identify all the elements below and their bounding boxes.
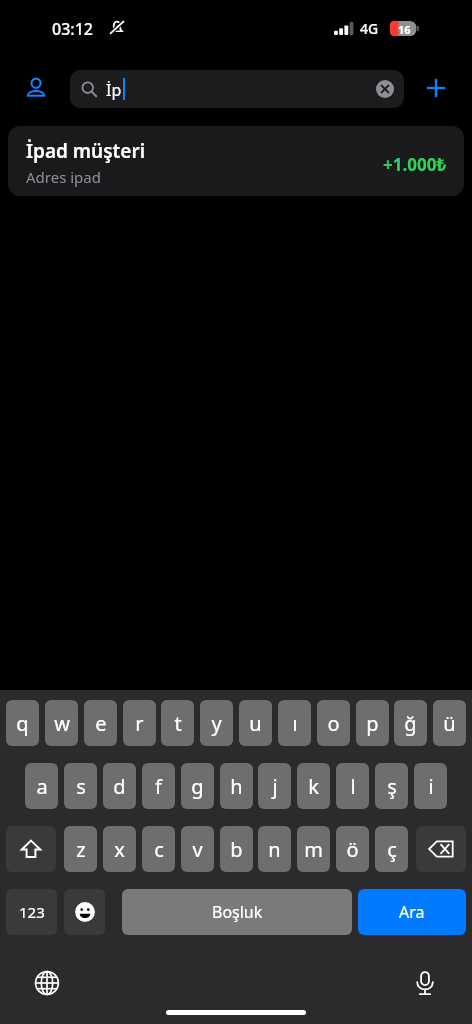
staticText: ö	[346, 836, 359, 863]
button[interactable]: d	[103, 763, 136, 809]
staticText: m	[304, 836, 323, 863]
staticText: d	[113, 773, 126, 800]
staticText: 16	[398, 22, 411, 37]
button[interactable]: s	[64, 763, 97, 809]
staticText: İp	[106, 79, 122, 101]
staticText: f	[155, 773, 162, 800]
button[interactable]: İpad müşteri	[8, 126, 464, 196]
staticText: ç	[387, 836, 397, 863]
staticText: ü	[443, 710, 456, 737]
button[interactable]: Voice input	[404, 962, 446, 1004]
staticText: j	[272, 773, 278, 800]
button[interactable]: e	[84, 700, 117, 746]
button[interactable]: Clear text	[376, 80, 394, 98]
button[interactable]: z	[64, 826, 97, 872]
staticText: +1.000₺	[383, 153, 447, 176]
button[interactable]: t	[161, 700, 194, 746]
button[interactable]: c	[142, 826, 175, 872]
button[interactable]: h	[220, 763, 253, 809]
staticText: g	[191, 773, 204, 800]
button[interactable]: ü	[433, 700, 466, 746]
button[interactable]: l	[336, 763, 369, 809]
button[interactable]: İp	[70, 70, 404, 108]
button[interactable]: x	[103, 826, 136, 872]
button[interactable]: b	[220, 826, 253, 872]
staticText: ı	[292, 710, 298, 737]
button[interactable]: o	[317, 700, 350, 746]
button[interactable]: v	[181, 826, 214, 872]
staticText: v	[192, 836, 203, 863]
staticText: i	[428, 773, 434, 800]
button[interactable]: Profile	[16, 68, 56, 108]
button[interactable]: a	[25, 763, 58, 809]
button[interactable]: Ara	[358, 889, 466, 935]
staticText: e	[95, 710, 107, 737]
button[interactable]: ı	[278, 700, 311, 746]
button[interactable]: p	[356, 700, 389, 746]
button[interactable]: j	[258, 763, 291, 809]
staticText: h	[230, 773, 243, 800]
button[interactable]: Boşluk	[122, 889, 352, 935]
button[interactable]: n	[258, 826, 291, 872]
button[interactable]: ç	[375, 826, 408, 872]
button[interactable]: q	[6, 700, 39, 746]
button[interactable]: u	[239, 700, 272, 746]
button[interactable]: ğ	[394, 700, 427, 746]
staticText: a	[36, 773, 48, 800]
staticText: u	[249, 710, 262, 737]
staticText: l	[350, 773, 356, 800]
button[interactable]: w	[45, 700, 78, 746]
button[interactable]: r	[123, 700, 156, 746]
button[interactable]: Shift	[6, 826, 56, 872]
staticText: w	[54, 710, 70, 737]
staticText: b	[230, 836, 243, 863]
staticText: y	[211, 710, 222, 737]
button[interactable]: ş	[375, 763, 408, 809]
staticText: k	[308, 773, 319, 800]
staticText: s	[76, 773, 86, 800]
staticText: n	[268, 836, 281, 863]
button[interactable]: k	[297, 763, 330, 809]
staticText: 4G	[360, 19, 379, 38]
staticText: o	[327, 710, 340, 737]
button[interactable]: Backspace	[416, 826, 466, 872]
staticText: Boşluk	[212, 901, 263, 923]
button[interactable]: Change keyboard language	[26, 962, 68, 1004]
button[interactable]: f	[142, 763, 175, 809]
staticText: ğ	[404, 710, 417, 737]
button[interactable]: ö	[336, 826, 369, 872]
button[interactable]: i	[414, 763, 447, 809]
staticText: z	[76, 836, 86, 863]
button[interactable]: Add	[416, 68, 456, 108]
staticText: İpad müşteri	[26, 138, 146, 164]
button[interactable]: Emoji	[64, 889, 105, 935]
staticText: r	[135, 710, 144, 737]
staticText: ş	[387, 773, 397, 800]
staticText: 123	[19, 902, 45, 922]
staticText: Ara	[399, 901, 425, 923]
staticText: t	[174, 710, 182, 737]
staticText: x	[114, 836, 125, 863]
button[interactable]: y	[200, 700, 233, 746]
staticText: c	[154, 836, 164, 863]
button[interactable]: g	[181, 763, 214, 809]
staticText: 03:12	[52, 18, 93, 40]
staticText: q	[16, 710, 29, 737]
button[interactable]: 123	[6, 889, 57, 935]
staticText: Adres ipad	[26, 167, 101, 187]
staticText: p	[366, 710, 379, 737]
button[interactable]: m	[297, 826, 330, 872]
